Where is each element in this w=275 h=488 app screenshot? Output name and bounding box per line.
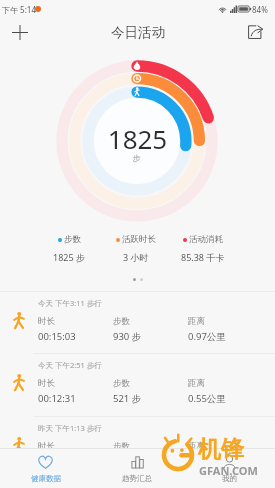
staticText: 步数 [113,441,130,452]
staticText: GFAN.COM [199,463,258,478]
button[interactable]: 今天 下午3:11 步行 [0,292,275,353]
staticText: 今天 下午2:51 步行 [38,360,102,370]
staticText: 84% [252,4,268,15]
staticText: 我的 [222,474,237,483]
staticText: 步数 [64,234,81,245]
staticText: 下午 5:14 [2,4,36,15]
staticText: 趋势汇总 [122,474,152,483]
staticText: 521 步 [113,392,142,405]
staticText: 步数 [113,316,130,327]
staticText: 3 小时 [123,251,149,263]
staticText: 昨天 下午1:13 步行 [38,423,102,433]
button[interactable]: Share [237,18,273,46]
staticText: 今天 下午3:11 步行 [38,298,102,308]
staticText: 0.97公里 [188,330,226,343]
button[interactable]: 健康数据 [0,449,91,488]
staticText: 活跃时长 [122,234,156,245]
staticText: 0.32公里 [188,455,226,468]
staticText: 1825 [0,121,275,156]
staticText: 00:08:12 [38,455,76,468]
button[interactable]: 今天 下午2:51 步行 [0,354,275,415]
staticText: 00:12:31 [38,392,76,405]
staticText: 330 步 [113,455,142,468]
button[interactable]: 昨天 下午1:13 步行 [0,417,275,478]
staticText: 今日活动 [111,24,165,41]
staticText: 930 步 [113,330,142,343]
staticText: 活动消耗 [189,234,223,245]
staticText: 0.55公里 [188,392,226,405]
staticText: 步 [0,153,274,163]
staticText: 距离 [188,316,205,327]
staticText: 健康数据 [31,474,61,483]
staticText: 时长 [38,378,55,389]
staticText: 85.38 千卡 [181,251,225,263]
button[interactable]: 趋势汇总 [91,449,183,488]
staticText: 距离 [188,441,205,452]
staticText: 步数 [113,378,130,389]
staticText: 00:15:03 [38,330,76,343]
button[interactable]: Add [2,18,38,46]
button[interactable]: 我的 [183,449,275,488]
staticText: 距离 [188,378,205,389]
staticText: 时长 [38,316,55,327]
staticText: 1825 步 [53,251,85,263]
staticText: 机锋 [198,435,244,464]
staticText: 时长 [38,441,55,452]
